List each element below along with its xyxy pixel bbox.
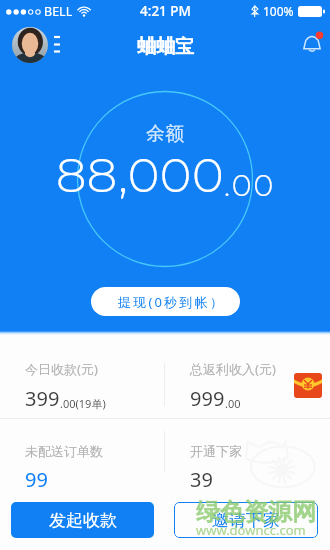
staticText: 未配送订单数 [25, 443, 103, 459]
button[interactable]: 发起收款 [11, 502, 154, 538]
button[interactable]: 未配送订单数 [0, 418, 165, 493]
staticText: 发起收款 [49, 510, 117, 531]
button[interactable]: 开通下家 [165, 418, 330, 493]
staticText: 提现(0秒到帐） [118, 293, 225, 311]
staticText: .00 [225, 396, 241, 411]
staticText: 4:21 PM [140, 2, 191, 20]
staticText: 绿色资源网 [196, 497, 316, 527]
button[interactable]: Profile [12, 27, 48, 63]
staticText: .00 [224, 167, 276, 204]
staticText: 100% [263, 3, 294, 19]
staticText: 开通下家 [190, 443, 242, 459]
staticText: www.downcc.com [196, 521, 306, 539]
staticText: 余额 [146, 122, 184, 146]
staticText: 399 [25, 385, 60, 412]
staticText: .00(19单) [60, 396, 106, 411]
button[interactable]: Menu [50, 33, 68, 57]
staticText: 今日收款(元) [25, 360, 98, 378]
button[interactable]: Notifications [301, 32, 323, 54]
button[interactable]: 提现(0秒到帐） [91, 287, 240, 316]
staticText: 88,000 [56, 146, 224, 205]
staticText: 999 [190, 385, 225, 412]
button[interactable]: 邀请下家 [174, 502, 318, 538]
staticText: BELL [44, 3, 73, 20]
button[interactable]: 今日收款(元) [0, 335, 165, 412]
staticText: 邀请下家 [212, 510, 280, 531]
staticText: 总返利收入(元) [190, 360, 276, 378]
staticText: 99 [25, 466, 48, 493]
staticText: 39 [190, 466, 213, 493]
staticText: 蛐蛐宝 [137, 35, 194, 59]
button[interactable]: 总返利收入(元) [165, 335, 330, 418]
